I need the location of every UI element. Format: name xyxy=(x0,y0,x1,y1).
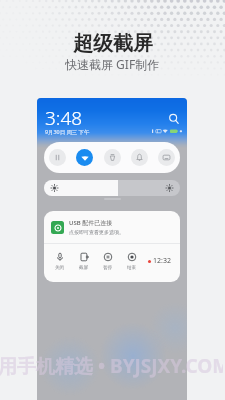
button[interactable]: 暂停 xyxy=(96,252,120,271)
staticText: 截屏 xyxy=(79,265,89,271)
button[interactable]: 结束 xyxy=(120,252,144,271)
staticText: USB 配件已连接 xyxy=(69,219,113,227)
staticText: 关闭 xyxy=(55,265,65,271)
staticText: 3:48 xyxy=(45,105,83,131)
button[interactable]: 截屏 xyxy=(72,252,96,271)
button[interactable]: Search xyxy=(168,113,180,125)
button[interactable]: 关闭 xyxy=(48,252,72,271)
staticText: 结束 xyxy=(127,265,137,271)
button[interactable]: Do not disturb xyxy=(131,149,148,166)
button[interactable]: Cast screen xyxy=(158,149,175,166)
staticText: 暂停 xyxy=(103,265,113,271)
staticText: 点按即可查看更多选项。 xyxy=(69,229,124,235)
button[interactable]: Mobile data xyxy=(49,149,66,166)
button[interactable]: Flashlight xyxy=(104,149,121,166)
staticText: 用手机精选 • BYJSJXY.COM xyxy=(0,353,223,379)
button[interactable]: Brightness xyxy=(44,180,180,196)
staticText: 9月30日 周三 下午 xyxy=(45,128,90,135)
staticText: 12:32 xyxy=(153,256,171,266)
staticText: 快速截屏 GIF制作 xyxy=(65,56,160,72)
button[interactable]: Wi-Fi xyxy=(76,149,93,166)
staticText: 超级截屏 xyxy=(73,31,153,56)
button[interactable]: USB 配件已连接 xyxy=(44,211,180,282)
